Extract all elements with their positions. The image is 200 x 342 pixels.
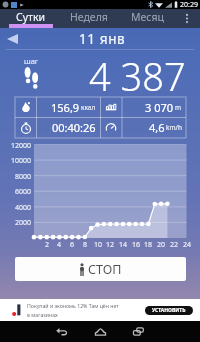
button[interactable]: СТОП	[15, 257, 186, 281]
button[interactable]: 4,6	[100, 117, 186, 138]
button[interactable]: 156,9	[15, 97, 100, 117]
staticText: ккал	[81, 103, 96, 112]
staticText: 8	[79, 240, 91, 250]
staticText: Неделя	[70, 10, 108, 24]
staticText: m	[175, 103, 182, 112]
staticText: 12	[104, 240, 116, 250]
button[interactable]: Покупай и экономь 12% Там цён нет	[0, 299, 200, 321]
button[interactable]: 3 070	[100, 97, 186, 117]
staticText: 6	[66, 240, 78, 250]
staticText: km/h	[166, 123, 182, 132]
staticText: УСТАНОВИТЬ	[152, 307, 186, 314]
staticText: 4	[53, 240, 65, 250]
staticText: 2000	[0, 218, 31, 228]
button[interactable]: Previous day	[0, 28, 24, 50]
button[interactable]: Back	[46, 321, 76, 342]
button[interactable]: Recent apps	[123, 321, 153, 342]
button[interactable]: More options	[177, 9, 197, 28]
staticText: 10000	[0, 156, 31, 166]
staticText: 156,9	[51, 100, 80, 115]
staticText: Покупай и экономь 12% Там цён нет	[27, 302, 119, 309]
staticText: 2	[41, 240, 53, 250]
staticText: шаг	[24, 56, 39, 66]
staticText: 00:40:26	[52, 120, 96, 135]
staticText: в магазинах	[27, 311, 58, 318]
button[interactable]: Месяц	[118, 9, 176, 28]
staticText: 22	[168, 240, 180, 250]
staticText: 20	[155, 240, 167, 250]
staticText: 8000	[0, 172, 31, 182]
button[interactable]: УСТАНОВИТЬ	[145, 306, 193, 315]
staticText: 20:29	[180, 0, 198, 9]
staticText: 18	[142, 240, 154, 250]
staticText: 10	[92, 240, 104, 250]
staticText: 3 070	[145, 100, 174, 115]
staticText: 24	[181, 240, 193, 250]
button[interactable]: Home	[85, 321, 115, 342]
staticText: 4000	[0, 203, 31, 213]
staticText: 4 387	[89, 50, 186, 92]
staticText: Сутки	[16, 10, 46, 24]
button[interactable]: 00:40:26	[15, 117, 100, 138]
button[interactable]: Сутки	[2, 9, 60, 28]
staticText: 6000	[0, 187, 31, 197]
staticText: 16	[130, 240, 142, 250]
button[interactable]: Неделя	[60, 9, 118, 28]
staticText: Месяц	[131, 10, 164, 24]
staticText: 11 янв	[79, 30, 126, 48]
staticText: 12000	[0, 141, 31, 151]
staticText: 14	[117, 240, 129, 250]
staticText: СТОП	[88, 261, 122, 278]
staticText: 4,6	[149, 120, 165, 135]
